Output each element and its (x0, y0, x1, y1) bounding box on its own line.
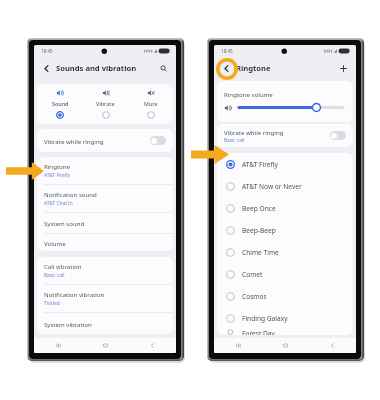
staticText: Vibrate (96, 100, 115, 107)
button[interactable]: Sound (37, 84, 83, 124)
button[interactable]: Mute (128, 84, 173, 124)
staticText: Comet (242, 270, 263, 279)
staticText: Ringtone (44, 162, 70, 170)
button[interactable]: Recents (34, 338, 82, 353)
staticText: Ringtone (236, 63, 271, 73)
button[interactable]: Home (82, 338, 129, 353)
staticText: Chime Time (242, 248, 279, 257)
button[interactable]: Volume (37, 234, 173, 251)
staticText: AT&T Chat In (44, 200, 73, 207)
button[interactable]: Add (337, 62, 350, 75)
staticText: System vibration (44, 320, 92, 328)
staticText: Notification sound (44, 190, 97, 198)
button[interactable]: Back (220, 62, 233, 75)
button[interactable]: Notification sound (37, 185, 173, 212)
staticText: Basic call (44, 272, 65, 279)
staticText: AT&T Firefly (242, 160, 278, 169)
staticText: Tickled (44, 300, 60, 307)
button[interactable]: Back (309, 338, 356, 353)
staticText: System sound (44, 219, 85, 227)
staticText: 18:45 (221, 48, 233, 54)
button[interactable]: System vibration (37, 313, 173, 334)
button[interactable]: Home (262, 338, 309, 353)
button[interactable]: Back (129, 338, 176, 353)
staticText: AT&T Firefly (44, 172, 71, 179)
staticText: Basic call (224, 137, 245, 144)
button[interactable]: AT&T Now or Never (217, 175, 353, 197)
button[interactable]: Finding Galaxy (217, 307, 353, 329)
staticText: Forest Day (242, 329, 275, 335)
button[interactable]: Recents (214, 338, 262, 353)
button[interactable]: Chime Time (217, 241, 353, 263)
staticText: Sounds and vibration (56, 63, 137, 73)
button[interactable]: Back (40, 62, 53, 75)
staticText: Cosmos (242, 292, 267, 301)
staticText: 18:45 (41, 48, 53, 54)
button[interactable]: Comet (217, 263, 353, 285)
staticText: Notification vibration (44, 290, 105, 298)
button[interactable]: Call vibration (37, 257, 173, 284)
staticText: Finding Galaxy (242, 314, 288, 323)
staticText: Vibrate while ringing (44, 137, 104, 145)
staticText: Call vibration (44, 262, 82, 270)
button[interactable]: Vibrate while ringing (37, 129, 173, 152)
button[interactable]: Cosmos (217, 285, 353, 307)
button[interactable]: System sound (37, 213, 173, 233)
staticText: Sound (52, 100, 69, 107)
staticText: Ringtone volume (224, 90, 273, 98)
button[interactable]: Beep-Beep (217, 219, 353, 241)
staticText: Mute (144, 100, 158, 107)
staticText: Vibrate while ringing (224, 128, 284, 136)
button[interactable]: Forest Day (217, 329, 353, 335)
button[interactable]: Beep Once (217, 197, 353, 219)
button[interactable]: Search (157, 62, 170, 75)
button[interactable]: Vibrate while ringing (217, 124, 353, 147)
staticText: Volume (44, 239, 66, 247)
button[interactable]: Ringtone (37, 157, 173, 184)
button[interactable]: Vibrate (83, 84, 128, 124)
button[interactable]: Vibrate while ringing toggle (150, 136, 166, 145)
button[interactable]: Notification vibration (37, 285, 173, 312)
staticText: AT&T Now or Never (242, 182, 302, 191)
staticText: Beep Once (242, 204, 276, 213)
staticText: Beep-Beep (242, 226, 276, 235)
button[interactable]: AT&T Firefly (217, 153, 353, 175)
button[interactable]: Vibrate while ringing toggle (330, 131, 346, 140)
